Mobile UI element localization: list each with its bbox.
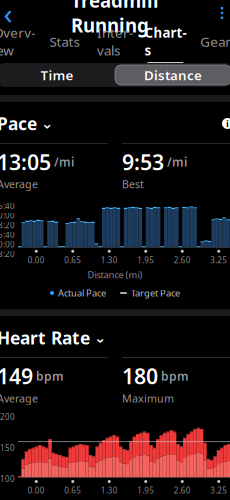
staticText: Intervals [97,24,133,59]
staticText: Stats [50,33,80,50]
staticText: Target Pace [131,287,180,299]
staticText: Distance (mi) [87,268,142,281]
staticText: 3.25 [210,485,227,496]
staticText: Best [122,177,144,191]
staticText: Heart Rate [0,326,90,349]
staticText: 16:40 [0,229,15,240]
button[interactable]: Overview [0,31,39,57]
staticText: /mi [54,154,74,170]
staticText: 180 [122,362,158,390]
staticText: Treadmill Running [71,0,159,38]
staticText: 100 [0,473,15,484]
staticText: 1.30 [101,255,118,265]
staticText: 200 [0,411,15,422]
staticText: 0.00 [28,485,45,496]
staticText: 10:00 [0,210,15,221]
staticText: Actual Pace [58,287,106,299]
button[interactable]: More options [205,0,230,28]
button[interactable]: Time [0,65,115,85]
staticText: ‹ [3,0,12,32]
staticText: Average [0,177,38,191]
staticText: 150 [0,442,15,453]
staticText: Distance [144,66,202,84]
staticText: 3.25 [210,255,227,265]
staticText: Time [40,66,73,84]
staticText: 1.30 [101,485,118,496]
staticText: Pace [0,112,37,135]
button[interactable]: Stats [39,31,90,57]
staticText: Gear [200,33,230,50]
staticText: 13:05 [0,148,51,176]
staticText: bpm [36,368,64,384]
staticText: 2.60 [174,485,191,496]
staticText: i [226,117,229,130]
staticText: Maximum [122,391,174,405]
button[interactable]: Information [222,118,230,129]
staticText: 6:40 [0,201,15,211]
staticText: 23:20 [0,249,15,259]
staticText: Overview [0,24,35,59]
staticText: Charts [144,24,186,59]
staticText: ⌄ [94,329,106,346]
staticText: Average [0,391,38,405]
staticText: 13:20 [0,220,15,230]
button[interactable]: Distance [115,65,230,85]
staticText: 149 [0,362,33,390]
staticText: 0.00 [28,255,45,265]
staticText: 1.95 [137,485,154,496]
button[interactable]: Heart Rate [0,326,106,349]
staticText: bpm [161,368,189,384]
button[interactable]: Charts [140,31,191,57]
button[interactable]: Back [0,0,25,28]
staticText: /mi [167,154,187,170]
staticText: ⌄ [41,115,53,132]
staticText: 2.60 [174,255,191,265]
staticText: 20:00 [0,239,15,250]
button[interactable]: Pace [0,112,53,135]
staticText: 0.65 [64,255,81,265]
button[interactable]: Gear [191,31,230,57]
button[interactable]: Intervals [90,31,140,57]
staticText: 9:53 [122,148,164,176]
staticText: 0.65 [64,485,81,496]
staticText: 1.95 [137,255,154,265]
